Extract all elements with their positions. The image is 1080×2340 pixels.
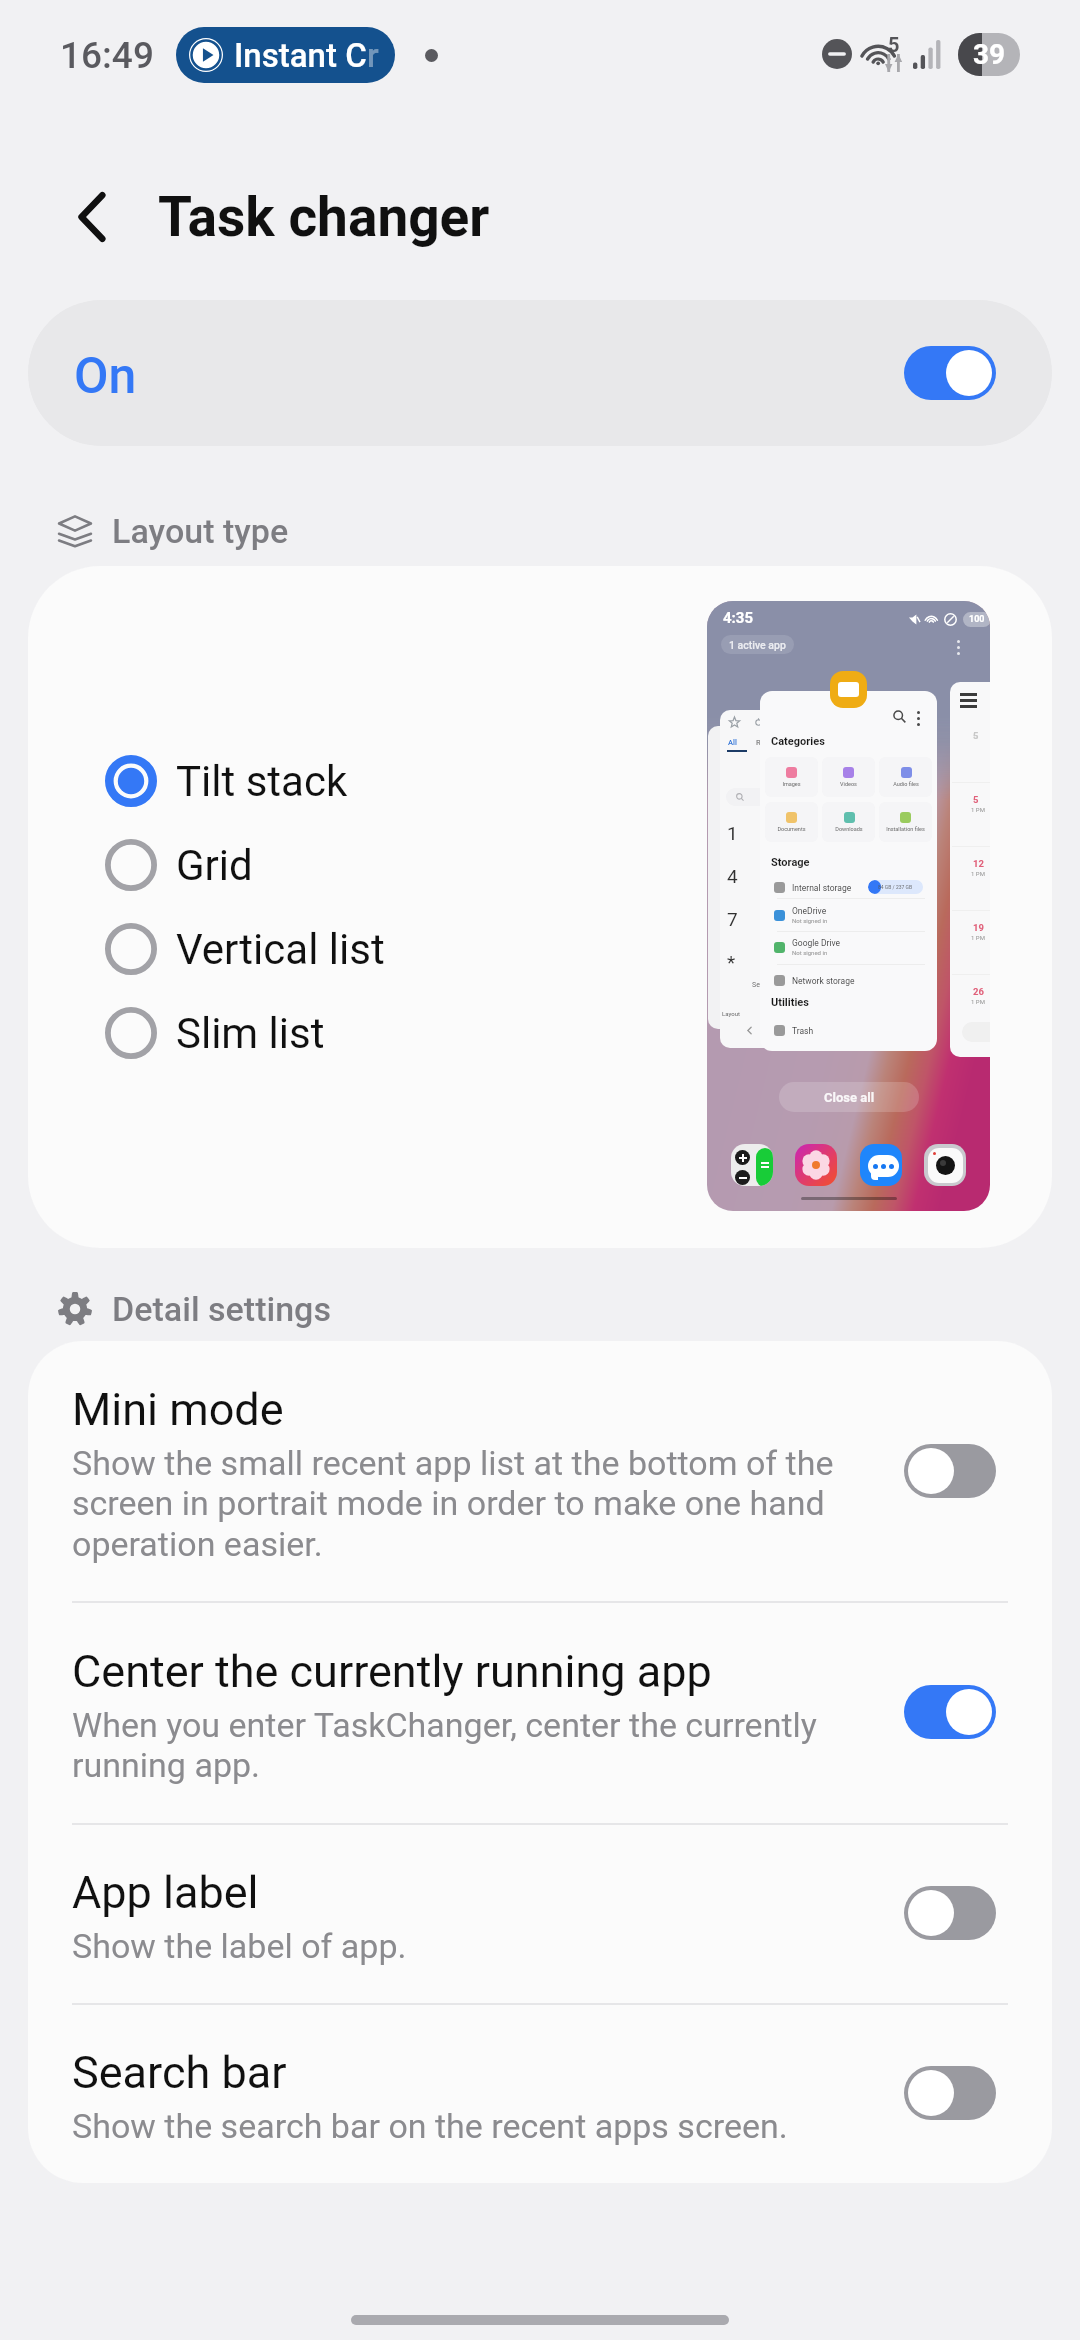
staticText: 39	[973, 38, 1006, 71]
button[interactable]: Search bar	[28, 2003, 1052, 2182]
button[interactable]: Images	[765, 757, 818, 797]
staticText: 4:35	[723, 609, 754, 627]
button[interactable]: Slim list	[105, 991, 585, 1075]
staticText: Trash	[792, 1026, 814, 1036]
staticText: 5	[973, 794, 979, 805]
staticText: Images	[782, 781, 801, 787]
staticText: When you enter TaskChanger, center the c…	[72, 1705, 882, 1786]
staticText: 19	[973, 922, 984, 933]
staticText: On	[74, 347, 137, 406]
staticText: 1 PM	[971, 934, 985, 941]
button[interactable]: Center the currently running app	[28, 1601, 1052, 1823]
staticText: Search Keyp	[752, 981, 791, 989]
staticText: Network storage	[792, 976, 855, 986]
button[interactable]: Switch off	[904, 1886, 996, 1940]
staticText: Audio files	[893, 781, 919, 787]
button[interactable]: Installation files	[879, 802, 932, 842]
staticText: Vertical list	[176, 925, 385, 974]
staticText: 5	[973, 730, 979, 741]
button[interactable]: Videos	[822, 757, 875, 797]
staticText: Mini mode	[72, 1383, 284, 1436]
staticText: Show the label of app.	[72, 1926, 407, 1966]
staticText: Downloads	[835, 826, 863, 832]
staticText: Storage	[771, 856, 810, 869]
staticText: 1 PM	[971, 870, 985, 877]
staticText: Not signed in	[792, 917, 828, 924]
staticText: Utilities	[771, 996, 809, 1009]
staticText: r	[367, 36, 379, 75]
staticText: Installation files	[886, 826, 925, 832]
button[interactable]: Tilt stack	[105, 739, 585, 823]
staticText: Not signed in	[792, 949, 828, 956]
staticText: Center the currently running app	[72, 1645, 712, 1698]
staticText: Detail settings	[112, 1289, 331, 1329]
staticText: 1 active app	[729, 639, 786, 651]
button[interactable]: On	[28, 300, 1052, 446]
button[interactable]: Documents	[765, 802, 818, 842]
staticText: 4	[727, 865, 738, 887]
staticText: 7	[727, 908, 738, 930]
staticText: All	[728, 738, 737, 747]
staticText: 1	[727, 822, 738, 844]
staticText: Tilt stack	[176, 757, 348, 806]
button[interactable]: Close all	[779, 1082, 919, 1112]
staticText: *	[727, 951, 736, 973]
button[interactable]: Audio files	[879, 757, 932, 797]
button[interactable]: Switch on	[904, 1685, 996, 1739]
staticText: 12	[973, 858, 984, 869]
staticText: Internal storage	[792, 883, 852, 893]
button[interactable]: App label	[28, 1823, 1052, 2003]
staticText: Back/Ans	[762, 1002, 793, 1010]
staticText: 1 PM	[971, 998, 985, 1005]
staticText: Slim list	[176, 1009, 325, 1058]
button[interactable]: Grid	[105, 823, 585, 907]
button[interactable]: Vertical list	[105, 907, 585, 991]
staticText: Documents	[777, 826, 806, 832]
staticText: Show the search bar on the recent apps s…	[72, 2106, 788, 2146]
staticText: 100	[969, 614, 985, 625]
staticText: 84 GB / 237 GB	[878, 884, 913, 890]
button[interactable]: Downloads	[822, 802, 875, 842]
staticText: App label	[72, 1866, 259, 1919]
button[interactable]: Navigate up	[44, 167, 144, 267]
button[interactable]: Switch off	[904, 2066, 996, 2120]
staticText: Task changer	[158, 185, 490, 249]
staticText: Google Drive	[792, 938, 841, 948]
staticText: Layout type	[112, 511, 289, 551]
staticText: OneDrive	[792, 906, 827, 916]
staticText: 26	[973, 986, 984, 997]
staticText: Show the small recent app list at the bo…	[72, 1443, 882, 1565]
button[interactable]: Instant Cricket	[176, 27, 395, 83]
staticText: Close all	[824, 1090, 875, 1105]
staticText: 5	[888, 33, 900, 56]
staticText: Instant C	[234, 36, 367, 75]
staticText: Grid	[176, 841, 253, 890]
button[interactable]: Switch on	[904, 346, 996, 400]
staticText: Videos	[840, 781, 857, 787]
staticText: 16:49	[60, 34, 154, 77]
staticText: RE	[756, 738, 765, 747]
staticText: Categories	[771, 735, 825, 748]
staticText: 1 PM	[971, 806, 985, 813]
staticText: Layout	[722, 1010, 740, 1017]
button[interactable]: Switch off	[904, 1444, 996, 1498]
staticText: Search bar	[72, 2046, 287, 2099]
button[interactable]: Mini mode	[28, 1341, 1052, 1601]
